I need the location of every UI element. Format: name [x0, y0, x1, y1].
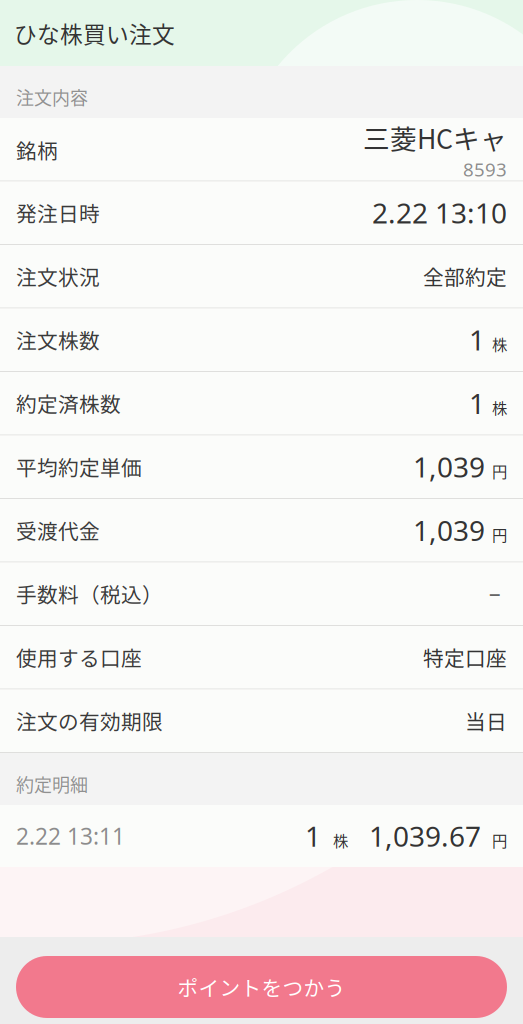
staticText: 1 — [305, 817, 321, 855]
staticText: 注文の有効期限 — [16, 706, 163, 736]
staticText: 株 — [492, 333, 507, 355]
staticText: 平均約定単価 — [16, 452, 142, 482]
staticText: 円 — [492, 460, 507, 482]
staticText: 1,039 — [413, 511, 485, 549]
staticText: ポイントをつかう — [177, 972, 345, 1002]
staticText: 2.22 13:10 — [372, 194, 507, 232]
staticText: 手数料（税込） — [16, 579, 163, 609]
staticText: 発注日時 — [16, 198, 100, 228]
staticText: 1 — [469, 384, 485, 422]
staticText: 注文状況 — [16, 261, 100, 291]
staticText: 8593 — [463, 157, 507, 182]
staticText: 受渡代金 — [16, 515, 100, 545]
staticText: 2.22 13:11 — [16, 821, 125, 851]
staticText: 株 — [333, 829, 348, 851]
staticText: 株 — [492, 396, 507, 418]
staticText: 1 — [469, 321, 485, 359]
staticText: 注文株数 — [16, 325, 100, 355]
staticText: 約定明細 — [16, 771, 88, 797]
staticText: 注文内容 — [16, 84, 88, 110]
staticText: 約定済株数 — [16, 388, 121, 418]
staticText: 全部約定 — [423, 261, 507, 291]
staticText: 当日 — [465, 706, 507, 736]
staticText: 特定口座 — [423, 642, 507, 672]
staticText: 円 — [492, 829, 507, 851]
staticText: 銘柄 — [16, 135, 58, 165]
staticText: ひな株買い注文 — [14, 17, 175, 49]
staticText: 1,039.67 — [369, 817, 481, 855]
staticText: − — [489, 579, 500, 609]
staticText: 三菱HCキャ — [363, 118, 507, 157]
staticText: 円 — [492, 523, 507, 545]
button[interactable]: ポイントをつかう — [16, 956, 507, 1018]
staticText: 使用する口座 — [16, 642, 142, 672]
staticText: 1,039 — [413, 448, 485, 486]
